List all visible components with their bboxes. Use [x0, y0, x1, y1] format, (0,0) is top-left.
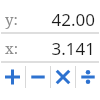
button[interactable]: y:	[0, 8, 100, 30]
staticText: 3.141	[22, 37, 95, 59]
staticText: x:	[5, 38, 18, 58]
button[interactable]: x:	[0, 37, 100, 59]
staticText: y:	[5, 9, 18, 29]
button[interactable]: Divide	[76, 64, 100, 90]
button[interactable]: Multiply	[51, 64, 75, 90]
button[interactable]: Add	[0, 64, 25, 90]
staticText: 42.00	[22, 8, 95, 30]
button[interactable]: Subtract	[26, 64, 50, 90]
